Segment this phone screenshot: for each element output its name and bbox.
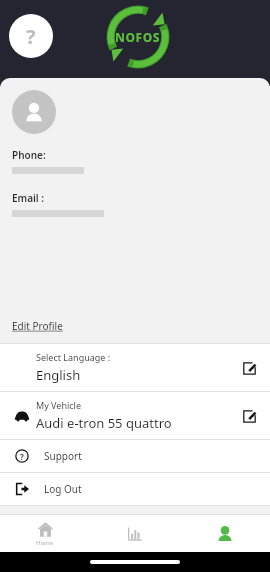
staticText: ? xyxy=(26,23,36,50)
button[interactable]: My Vehicle xyxy=(0,392,270,439)
staticText: Edit Profile xyxy=(12,319,63,333)
staticText: Phone: xyxy=(12,148,46,162)
staticText: Audi e-tron 55 quattro xyxy=(36,414,172,432)
button[interactable]: ? xyxy=(0,440,270,472)
button[interactable]: Home xyxy=(0,515,90,552)
staticText: My Vehicle xyxy=(36,399,81,411)
button[interactable]: Select Language : xyxy=(0,344,270,391)
button[interactable]: Profile xyxy=(180,515,270,552)
staticText: Support xyxy=(44,449,82,463)
staticText: Home xyxy=(36,539,54,547)
staticText: ? xyxy=(20,451,24,462)
staticText: Log Out xyxy=(44,482,82,496)
staticText: Email : xyxy=(12,191,45,205)
staticText: NOFOS xyxy=(115,29,161,45)
button[interactable]: Help xyxy=(9,14,53,58)
staticText: English xyxy=(36,366,81,384)
button[interactable]: Edit Profile xyxy=(12,319,63,333)
staticText: Select Language : xyxy=(36,351,111,363)
button[interactable]: Statistics xyxy=(90,515,180,552)
button[interactable]: Log Out xyxy=(0,473,270,505)
button[interactable]: Edit Select Language : xyxy=(238,357,260,379)
button[interactable]: Edit My Vehicle xyxy=(238,405,260,427)
